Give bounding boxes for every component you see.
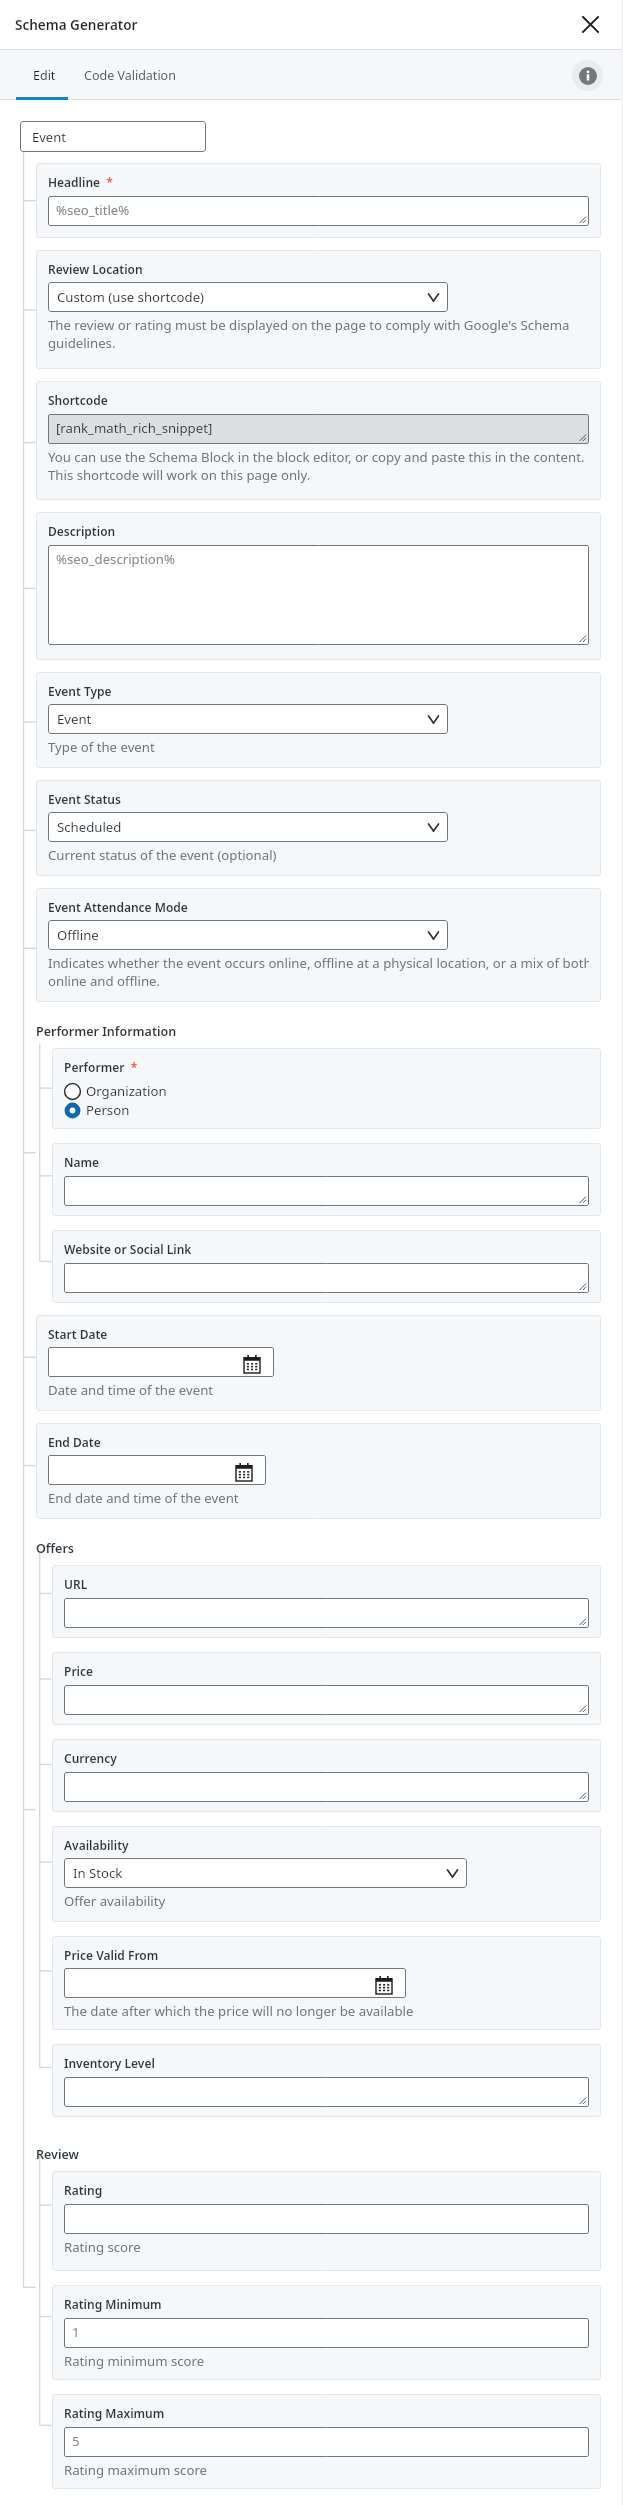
button[interactable]: [rank_math_rich_snippet] — [48, 414, 589, 444]
staticText: Availability — [64, 1837, 129, 1853]
staticText: Event — [32, 128, 66, 146]
staticText: Date and time of the event — [48, 1381, 214, 1399]
staticText: Rating Maximum — [64, 2405, 165, 2421]
staticText: Code Validation — [84, 67, 176, 84]
button[interactable] — [64, 2204, 589, 2234]
staticText: Shortcode — [48, 392, 108, 408]
button[interactable] — [64, 1772, 589, 1802]
staticText: Type of the event — [48, 738, 155, 756]
staticText: Event Status — [48, 791, 121, 807]
staticText: guidelines. — [48, 334, 116, 352]
button[interactable]: %seo_title% — [48, 196, 589, 226]
staticText: %seo_title% — [56, 201, 130, 219]
staticText: The date after which the price will no l… — [64, 2002, 414, 2020]
staticText: Review — [36, 2146, 79, 2163]
staticText: Offer availability — [64, 1892, 166, 1910]
staticText: online and offline. — [48, 972, 161, 990]
button[interactable]: Organization — [64, 1082, 167, 1100]
staticText: Rating — [64, 2182, 103, 2198]
staticText: Event — [57, 710, 92, 728]
staticText: 5 — [72, 2432, 80, 2450]
staticText: Offline — [57, 926, 99, 944]
staticText: [rank_math_rich_snippet] — [56, 419, 213, 437]
staticText: Start Date — [48, 1326, 108, 1342]
staticText: Price Valid From — [64, 1947, 159, 1963]
staticText: Event Type — [48, 683, 112, 699]
button[interactable] — [64, 2077, 589, 2107]
staticText: Event Attendance Mode — [48, 899, 188, 915]
staticText: Performer * — [64, 1059, 138, 1075]
staticText: %seo_description% — [56, 550, 175, 568]
staticText: This shortcode will work on this page on… — [48, 466, 311, 484]
button[interactable]: In Stock — [64, 1858, 467, 1888]
staticText: Name — [64, 1154, 100, 1170]
button[interactable] — [64, 1598, 589, 1628]
staticText: Person — [86, 1101, 130, 1119]
staticText: End date and time of the event — [48, 1489, 239, 1507]
button[interactable] — [64, 1685, 589, 1715]
button[interactable]: 5 — [64, 2427, 589, 2457]
staticText: Website or Social Link — [64, 1241, 192, 1257]
staticText: Currency — [64, 1750, 117, 1766]
button[interactable]: Close — [573, 7, 607, 41]
staticText: Rating minimum score — [64, 2352, 205, 2370]
staticText: Rating maximum score — [64, 2461, 208, 2479]
button[interactable]: Person — [64, 1101, 130, 1119]
button[interactable]: Custom (use shortcode) — [48, 282, 448, 312]
staticText: Rating Minimum — [64, 2296, 162, 2312]
staticText: Current status of the event (optional) — [48, 846, 277, 864]
staticText: Headline * — [48, 174, 113, 190]
staticText: URL — [64, 1576, 88, 1592]
staticText: Inventory Level — [64, 2055, 155, 2071]
button[interactable]: Event — [48, 704, 448, 734]
button[interactable]: Choose date — [48, 1347, 274, 1377]
button[interactable]: 1 — [64, 2318, 589, 2348]
button[interactable]: Choose date — [64, 1968, 406, 1998]
button[interactable]: Offline — [48, 920, 448, 950]
staticText: 1 — [72, 2323, 80, 2341]
staticText: Rating score — [64, 2238, 141, 2256]
staticText: Price — [64, 1663, 94, 1679]
staticText: Indicates whether the event occurs onlin… — [48, 954, 589, 972]
staticText: Schema Generator — [15, 16, 138, 34]
staticText: Description — [48, 523, 116, 539]
staticText: Offers — [36, 1540, 74, 1557]
button[interactable] — [64, 1263, 589, 1293]
staticText: Edit — [33, 67, 56, 84]
staticText: The review or rating must be displayed o… — [48, 316, 570, 334]
staticText: Custom (use shortcode) — [57, 288, 205, 306]
staticText: Review Location — [48, 261, 143, 277]
staticText: You can use the Schema Block in the bloc… — [48, 448, 585, 466]
button[interactable]: Scheduled — [48, 812, 448, 842]
button[interactable]: Event — [20, 121, 206, 152]
button[interactable]: Choose date — [48, 1455, 266, 1485]
button[interactable] — [64, 1176, 589, 1206]
staticText: Organization — [86, 1082, 167, 1100]
staticText: Performer Information — [36, 1023, 177, 1040]
button[interactable]: Info — [572, 60, 603, 91]
button[interactable]: Code Validation — [73, 50, 192, 100]
staticText: End Date — [48, 1434, 101, 1450]
staticText: In Stock — [73, 1864, 123, 1882]
button[interactable]: Edit — [16, 50, 73, 100]
button[interactable]: %seo_description% — [48, 545, 589, 645]
staticText: Scheduled — [57, 818, 122, 836]
